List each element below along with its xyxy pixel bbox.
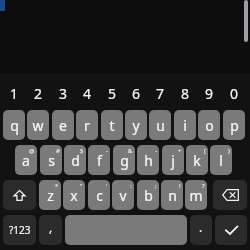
button[interactable]: 5 [101,82,123,104]
staticText: b [144,186,153,205]
button[interactable]: e [52,110,74,140]
staticText: " [80,182,83,190]
staticText: ( [204,147,206,155]
staticText: x [70,186,78,205]
button[interactable]: i [174,110,196,140]
button[interactable]: o [198,110,220,140]
button[interactable]: z [39,180,61,210]
staticText: v [119,186,127,205]
button[interactable]: v [112,180,134,210]
staticText: ) [228,147,230,155]
button[interactable]: 1 [3,82,25,104]
button[interactable]: 7 [149,82,171,104]
staticText: - [155,147,157,155]
button[interactable]: 0 [223,82,245,104]
button[interactable]: a [15,145,37,175]
button[interactable]: k [186,145,208,175]
button[interactable]: t [101,110,123,140]
staticText: j [171,151,175,170]
button[interactable]: f [88,145,110,175]
staticText: $ [80,147,84,155]
staticText: g [120,151,129,170]
button[interactable]: 6 [125,82,147,104]
staticText: y [132,116,140,135]
staticText: ? [202,182,205,190]
button[interactable]: w [27,110,49,140]
staticText: a [22,151,30,170]
button[interactable]: 4 [76,82,98,104]
button[interactable]: d [64,145,86,175]
button[interactable]: . [190,215,212,245]
staticText: l [219,151,223,170]
staticText: c [96,186,103,205]
staticText: 3 [59,84,68,103]
staticText: & [128,147,133,155]
button[interactable]: 9 [198,82,220,104]
staticText: 8 [181,84,190,103]
staticText: 7 [156,84,165,103]
staticText: # [56,147,60,155]
staticText: e [59,116,67,135]
staticText: ! [179,182,181,190]
button[interactable]: b [137,180,159,210]
button[interactable]: , [39,215,62,245]
staticText: : [130,182,132,190]
button[interactable]: l [210,145,232,175]
button[interactable]: 2 [27,82,49,104]
staticText: + [178,147,182,155]
staticText: m [189,186,203,205]
staticText: p [230,116,239,135]
button[interactable]: Backspace [213,180,247,210]
staticText: t [109,116,115,135]
staticText: 5 [108,84,117,103]
button[interactable]: Space [65,215,187,245]
staticText: u [156,116,165,135]
staticText: * [55,182,59,190]
button[interactable]: Shift [3,180,36,210]
staticText: 4 [83,84,92,103]
staticText: n [168,186,177,205]
staticText: ?123 [9,223,31,237]
staticText: q [10,116,19,135]
button[interactable]: j [162,145,184,175]
staticText: - [106,147,108,155]
staticText: r [84,116,90,135]
staticText: w [32,116,44,135]
button[interactable]: y [125,110,147,140]
button[interactable]: p [223,110,245,140]
staticText: o [205,116,214,135]
button[interactable]: 3 [52,82,74,104]
staticText: h [144,151,153,170]
staticText: 2 [34,84,43,103]
button[interactable]: n [161,180,183,210]
staticText: k [193,151,201,170]
staticText: s [48,151,55,170]
button[interactable]: q [3,110,25,140]
staticText: 9 [205,84,214,103]
staticText: 6 [132,84,141,103]
staticText: ; [155,182,157,190]
button[interactable]: Symbols [3,215,36,245]
button[interactable]: r [76,110,98,140]
staticText: ' [106,182,108,190]
button[interactable]: g [113,145,135,175]
button[interactable]: m [185,180,207,210]
button[interactable]: Enter [215,215,247,245]
button[interactable]: 8 [174,82,196,104]
staticText: f [97,151,102,170]
staticText: 1 [10,84,19,103]
staticText: d [71,151,80,170]
staticText: . [199,219,203,235]
button[interactable]: h [137,145,159,175]
staticText: i [183,116,187,135]
button[interactable]: x [63,180,85,210]
button[interactable]: c [88,180,110,210]
staticText: 0 [230,84,239,103]
staticText: @ [29,147,35,155]
staticText: , [49,219,53,235]
staticText: z [47,186,54,205]
button[interactable]: s [40,145,62,175]
button[interactable]: u [149,110,171,140]
